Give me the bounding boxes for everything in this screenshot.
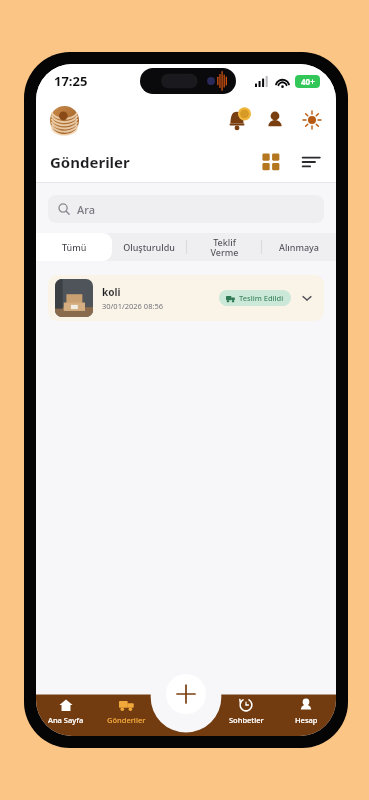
button[interactable]: Teklif Verme [187, 233, 261, 261]
staticText: Alınmaya [279, 241, 319, 253]
staticText: Gönderiler [50, 152, 130, 172]
button[interactable]: Expand [300, 291, 314, 305]
button[interactable]: Profile [265, 110, 285, 130]
button[interactable]: Gönderiler [96, 696, 156, 726]
button[interactable]: Ana Sayfa [36, 696, 96, 726]
staticText: Sohbetler [229, 715, 264, 725]
staticText: Gönderiler [107, 715, 146, 725]
staticText: 30/01/2026 08:56 [102, 301, 164, 311]
button[interactable]: Oluşturuldu [112, 233, 186, 261]
staticText: Teklif Verme [210, 236, 239, 258]
button[interactable]: Tümü [36, 233, 112, 261]
staticText: koli [102, 285, 121, 299]
button[interactable]: Logo [50, 106, 79, 135]
button[interactable]: Filter [300, 151, 322, 173]
button[interactable]: Add [166, 674, 206, 714]
button[interactable]: Teslim Edildi [219, 290, 291, 306]
button[interactable]: Alınmaya [262, 233, 336, 261]
button[interactable]: Notifications [226, 109, 248, 131]
button[interactable]: Sohbetler [216, 696, 276, 726]
button[interactable]: Grid view [260, 151, 282, 173]
button[interactable]: koli [48, 275, 324, 321]
staticText: 40+ [301, 76, 315, 87]
staticText: Ana Sayfa [48, 715, 84, 725]
staticText: Teslim Edildi [239, 293, 284, 303]
staticText: Ara [77, 202, 95, 217]
staticText: Tümü [62, 241, 87, 253]
button[interactable]: Ara [48, 195, 324, 223]
button[interactable]: Hesap [276, 696, 336, 726]
button[interactable]: Theme [302, 110, 322, 130]
staticText: 17:25 [54, 72, 88, 90]
staticText: Oluşturuldu [123, 241, 175, 253]
staticText: Hesap [295, 715, 318, 725]
